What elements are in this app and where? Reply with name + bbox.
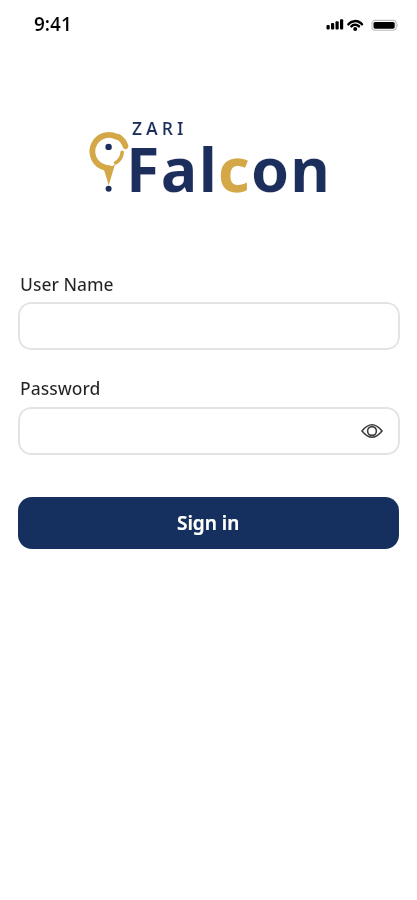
staticText: Password	[20, 376, 101, 400]
staticText: User Name	[20, 272, 114, 296]
staticText: Falcon	[126, 127, 332, 210]
button[interactable]: Sign in	[18, 497, 399, 549]
staticText: Sign in	[177, 510, 240, 536]
button[interactable]	[18, 302, 400, 350]
staticText: ZARI	[132, 116, 188, 140]
button[interactable]	[18, 407, 400, 455]
staticText: 9:41	[34, 11, 72, 37]
